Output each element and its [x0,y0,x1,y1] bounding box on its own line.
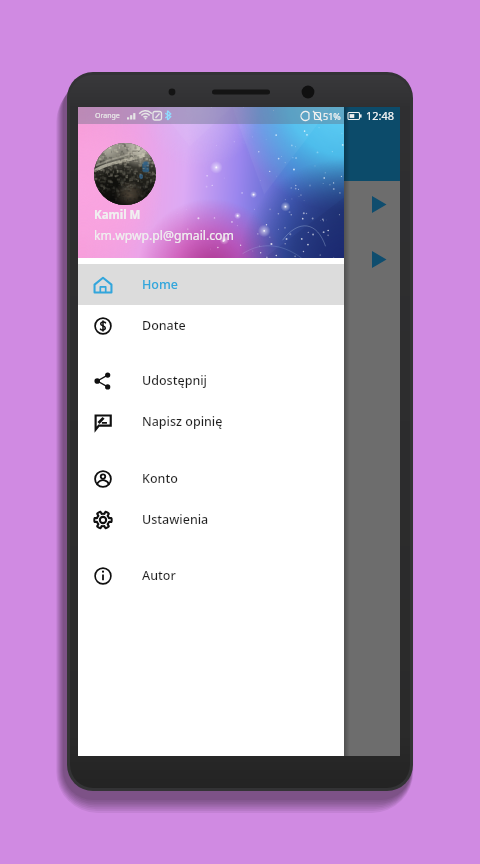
staticText: Ustawienia [142,511,209,528]
staticText: Napisz opinię [142,413,223,430]
staticText: Autor [142,567,176,584]
staticText: Konto [142,470,178,487]
staticText: Kamil M [94,207,141,223]
button[interactable]: Autor [78,555,344,596]
staticText: Udostępnij [142,372,207,389]
button[interactable]: Home [78,264,344,305]
button[interactable]: Konto [78,458,344,499]
staticText: km.wpwp.pl@gmail.com [94,227,234,244]
button[interactable]: Udostępnij [78,360,344,401]
staticText: Donate [142,317,186,334]
button[interactable]: Ustawienia [78,499,344,540]
staticText: 12:48 [366,108,395,123]
staticText: Orange [95,111,120,121]
staticText: Home [142,276,179,293]
button[interactable]: Donate [78,305,344,346]
staticText: 51% [323,110,341,122]
button[interactable]: Napisz opinię [78,401,344,442]
